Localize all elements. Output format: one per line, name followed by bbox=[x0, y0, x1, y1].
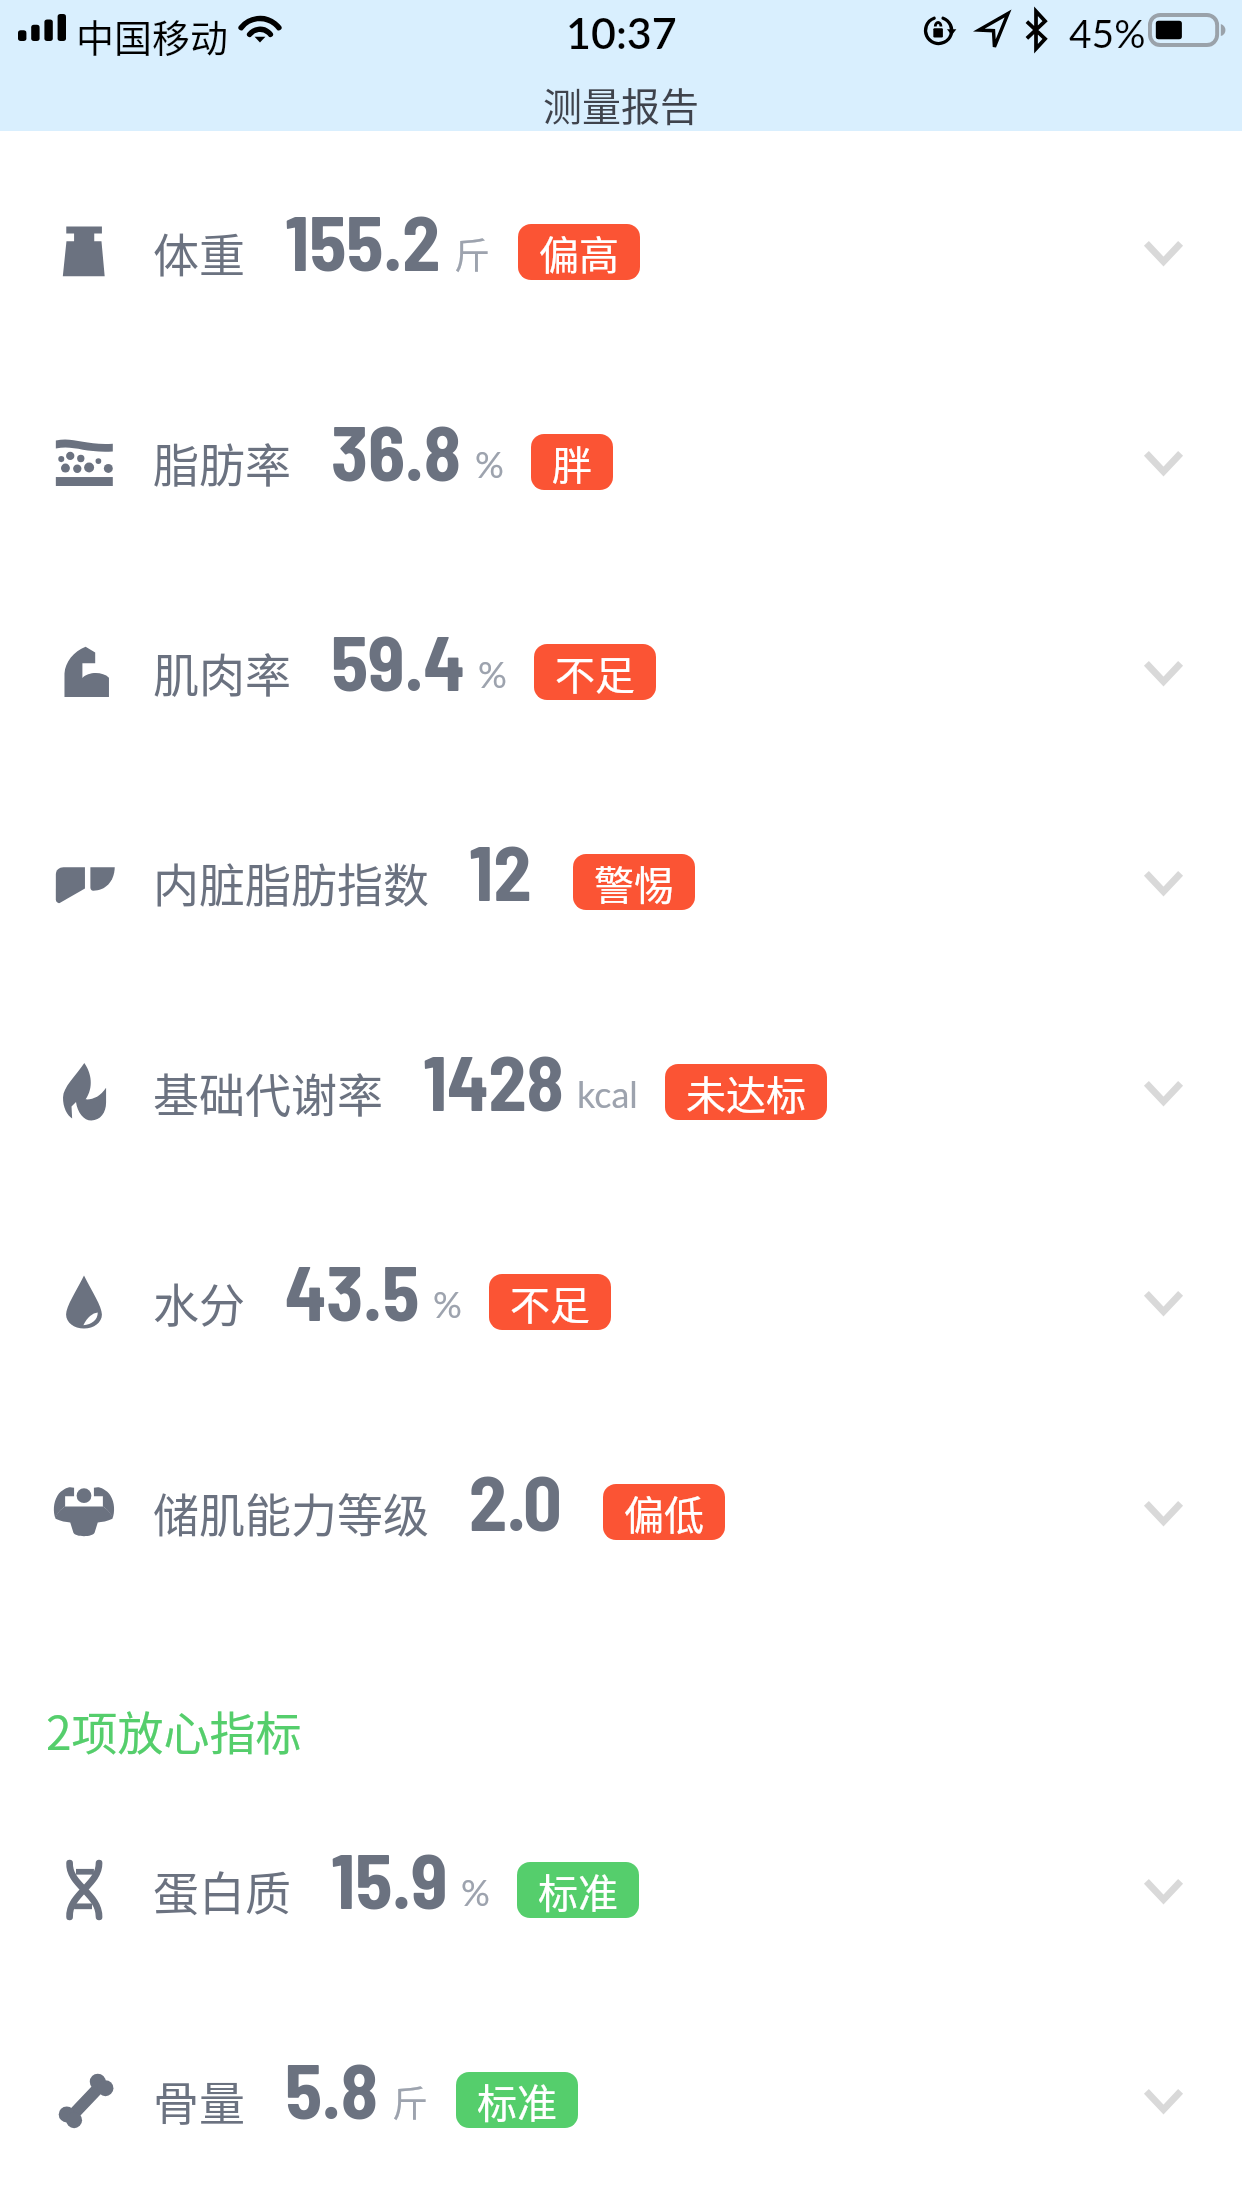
button[interactable]: 储肌能力等级 bbox=[0, 1457, 1242, 1567]
staticText: 43.5 bbox=[285, 1245, 420, 1336]
staticText: 斤 bbox=[392, 2075, 429, 2127]
staticText: % bbox=[461, 1870, 490, 1913]
staticText: 2.0 bbox=[469, 1455, 562, 1546]
button[interactable]: 骨量 bbox=[0, 2045, 1242, 2155]
button[interactable]: 脂肪率 bbox=[0, 407, 1242, 517]
button[interactable]: Expand bbox=[1109, 1248, 1217, 1356]
staticText: 肌肉率 bbox=[153, 639, 291, 706]
button[interactable]: Expand bbox=[1109, 2046, 1217, 2154]
button[interactable]: Expand bbox=[1109, 198, 1217, 306]
staticText: 15.9 bbox=[331, 1833, 448, 1924]
staticText: 偏高 bbox=[539, 224, 619, 280]
staticText: 1428 bbox=[423, 1035, 564, 1126]
staticText: 10:37 bbox=[566, 7, 677, 59]
staticText: 2项放心指标 bbox=[46, 1697, 302, 1764]
staticText: 测量报告 bbox=[543, 76, 700, 132]
staticText: 不足 bbox=[555, 644, 635, 700]
staticText: 5.8 bbox=[285, 2043, 379, 2134]
button[interactable]: 内脏脂肪指数 bbox=[0, 827, 1242, 937]
staticText: % bbox=[475, 442, 504, 485]
staticText: 体重 bbox=[153, 219, 245, 286]
button[interactable]: 蛋白质 bbox=[0, 1835, 1242, 1945]
staticText: 脂肪率 bbox=[153, 429, 291, 496]
button[interactable]: Expand bbox=[1109, 408, 1217, 516]
button[interactable]: Expand bbox=[1109, 1836, 1217, 1944]
button[interactable]: Expand bbox=[1109, 828, 1217, 936]
staticText: 155.2 bbox=[285, 195, 441, 286]
button[interactable]: Expand bbox=[1109, 1038, 1217, 1146]
staticText: 59.4 bbox=[331, 615, 465, 706]
staticText: 未达标 bbox=[686, 1064, 806, 1120]
staticText: 储肌能力等级 bbox=[153, 1479, 429, 1546]
staticText: kcal bbox=[577, 1072, 638, 1115]
staticText: 骨量 bbox=[153, 2067, 245, 2134]
staticText: 标准 bbox=[538, 1862, 618, 1918]
staticText: 36.8 bbox=[331, 405, 462, 496]
staticText: 警惕 bbox=[594, 854, 674, 910]
staticText: 中国移动 bbox=[76, 8, 229, 63]
staticText: 偏低 bbox=[624, 1484, 704, 1540]
staticText: 内脏脂肪指数 bbox=[153, 849, 429, 916]
button[interactable]: 肌肉率 bbox=[0, 617, 1242, 727]
button[interactable]: 基础代谢率 bbox=[0, 1037, 1242, 1147]
staticText: % bbox=[433, 1282, 462, 1325]
staticText: 45% bbox=[1069, 10, 1146, 57]
staticText: 基础代谢率 bbox=[153, 1059, 383, 1126]
button[interactable]: Expand bbox=[1109, 618, 1217, 726]
staticText: 蛋白质 bbox=[153, 1857, 291, 1924]
staticText: 胖 bbox=[552, 434, 592, 490]
button[interactable]: Expand bbox=[1109, 1458, 1217, 1566]
staticText: 12 bbox=[469, 825, 532, 916]
button[interactable]: 水分 bbox=[0, 1247, 1242, 1357]
staticText: 标准 bbox=[477, 2072, 557, 2128]
staticText: 水分 bbox=[153, 1269, 245, 1336]
button[interactable]: 体重 bbox=[0, 197, 1242, 307]
staticText: % bbox=[478, 652, 507, 695]
staticText: 斤 bbox=[454, 227, 491, 279]
staticText: 不足 bbox=[510, 1274, 590, 1330]
